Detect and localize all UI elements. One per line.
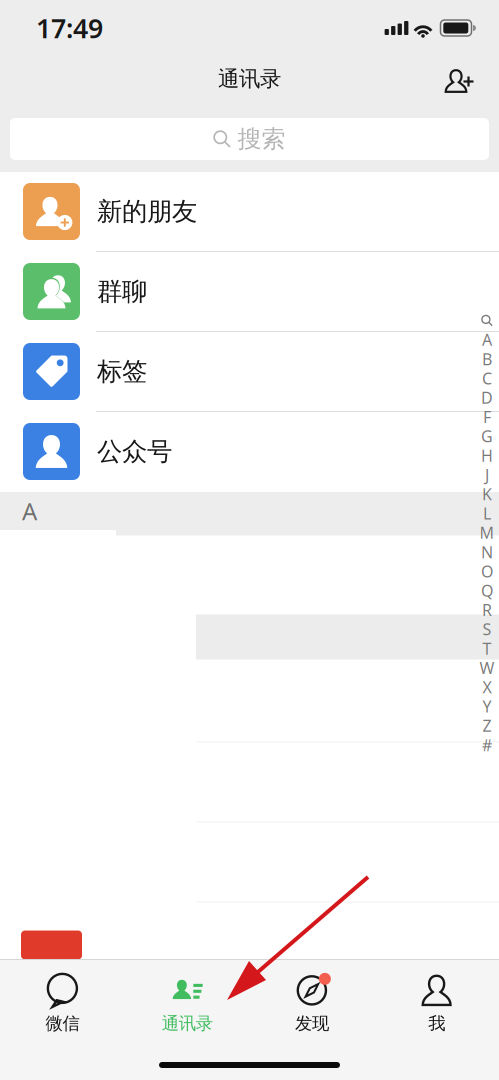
staticText: X xyxy=(482,676,491,698)
button[interactable]: 通讯录 xyxy=(125,960,250,1032)
staticText: M xyxy=(479,522,494,543)
staticText: L xyxy=(483,503,491,524)
staticText: 微信 xyxy=(45,1013,79,1034)
staticText: G xyxy=(481,425,493,447)
staticText: T xyxy=(482,638,491,659)
staticText: W xyxy=(479,657,494,678)
button[interactable]: 微信 xyxy=(0,960,125,1032)
staticText: S xyxy=(482,618,491,640)
staticText: 公众号 xyxy=(97,436,172,467)
staticText: 发现 xyxy=(295,1013,329,1034)
staticText: F xyxy=(483,406,491,427)
button[interactable]: 新的朋友 xyxy=(0,172,499,252)
staticText: 通讯录 xyxy=(162,1013,213,1034)
staticText: Y xyxy=(482,696,491,717)
staticText: 我 xyxy=(428,1013,445,1034)
button[interactable]: 我 xyxy=(374,960,499,1032)
staticText: K xyxy=(482,483,492,505)
staticText: J xyxy=(485,464,489,485)
button[interactable]: 群聊 xyxy=(0,252,499,332)
button[interactable]: 公众号 xyxy=(0,412,499,492)
staticText: D xyxy=(481,387,493,408)
staticText: Z xyxy=(482,715,491,736)
staticText: 17:49 xyxy=(36,10,103,46)
staticText: B xyxy=(482,348,492,369)
staticText: N xyxy=(481,541,493,562)
staticText: 标签 xyxy=(97,356,147,387)
staticText: H xyxy=(481,445,493,466)
staticText: 搜索 xyxy=(237,124,285,154)
button[interactable]: 标签 xyxy=(0,332,499,412)
staticText: R xyxy=(482,599,492,620)
staticText: A xyxy=(482,329,492,350)
staticText: # xyxy=(482,734,492,755)
button[interactable]: 发现 xyxy=(249,960,374,1032)
button[interactable]: Add contact xyxy=(436,56,476,102)
staticText: 群聊 xyxy=(97,276,147,307)
staticText: Q xyxy=(481,580,493,601)
staticText: C xyxy=(482,368,492,389)
staticText: 新的朋友 xyxy=(97,196,197,227)
staticText: 通讯录 xyxy=(218,66,281,92)
staticText: O xyxy=(481,561,493,582)
button[interactable]: 搜索 xyxy=(10,118,489,160)
staticText: A xyxy=(22,495,37,527)
